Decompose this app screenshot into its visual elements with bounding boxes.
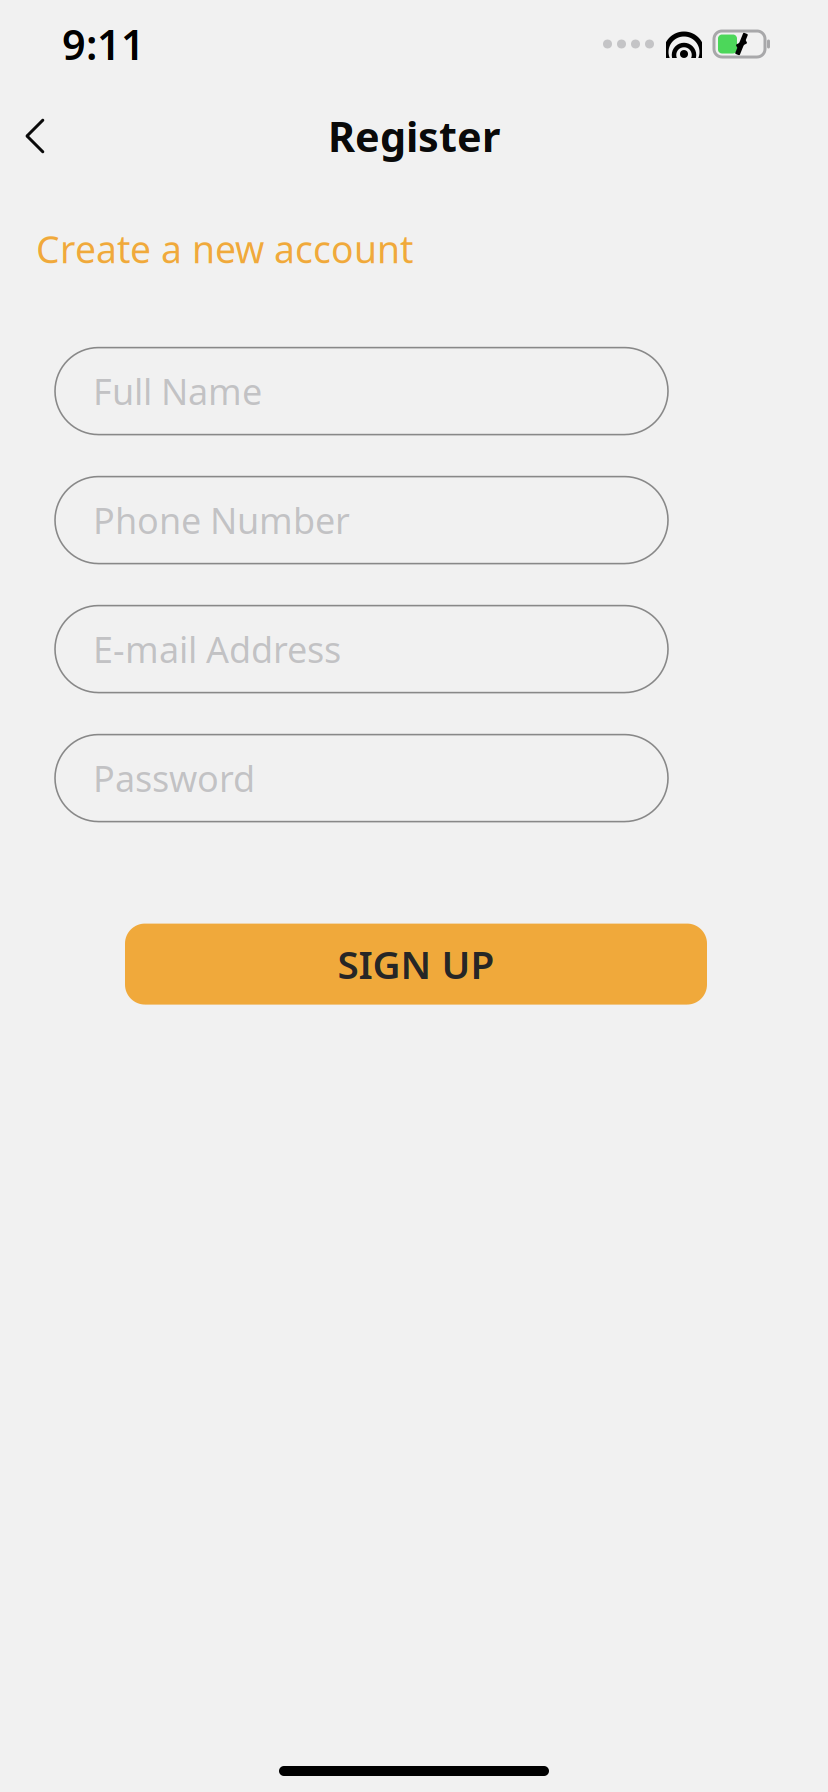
staticText: Create a new account — [36, 224, 413, 274]
staticText: SIGN UP — [337, 938, 494, 990]
staticText: Phone Number — [93, 496, 350, 544]
button[interactable]: SIGN UP — [125, 924, 707, 1005]
staticText: Full Name — [93, 367, 262, 415]
staticText: E-mail Address — [93, 625, 341, 673]
button[interactable]: Back — [0, 104, 70, 168]
staticText: 9:11 — [62, 17, 145, 71]
staticText: Register — [328, 109, 500, 163]
staticText: Password — [93, 754, 255, 802]
